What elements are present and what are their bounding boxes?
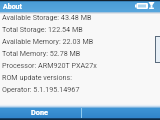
staticText: Total Storage: 122.54 MB bbox=[2, 25, 83, 33]
staticText: Done bbox=[31, 108, 49, 117]
staticText: Operator: 5.1.195.14967 bbox=[2, 85, 80, 93]
staticText: Total Memory: 52.78 MB bbox=[2, 49, 81, 57]
button[interactable] bbox=[82, 104, 160, 120]
other: Battery bbox=[135, 3, 148, 9]
staticText: ROM update versions: bbox=[2, 73, 72, 81]
other: Volume bbox=[148, 2, 155, 9]
staticText: Available Storage: 43.48 MB bbox=[2, 13, 92, 21]
staticText: Processor: ARM920T PXA27x bbox=[2, 61, 97, 69]
staticText: Available Memory: 22.03 MB bbox=[2, 37, 94, 45]
staticText: About bbox=[3, 3, 22, 11]
button[interactable]: Done bbox=[0, 104, 81, 120]
